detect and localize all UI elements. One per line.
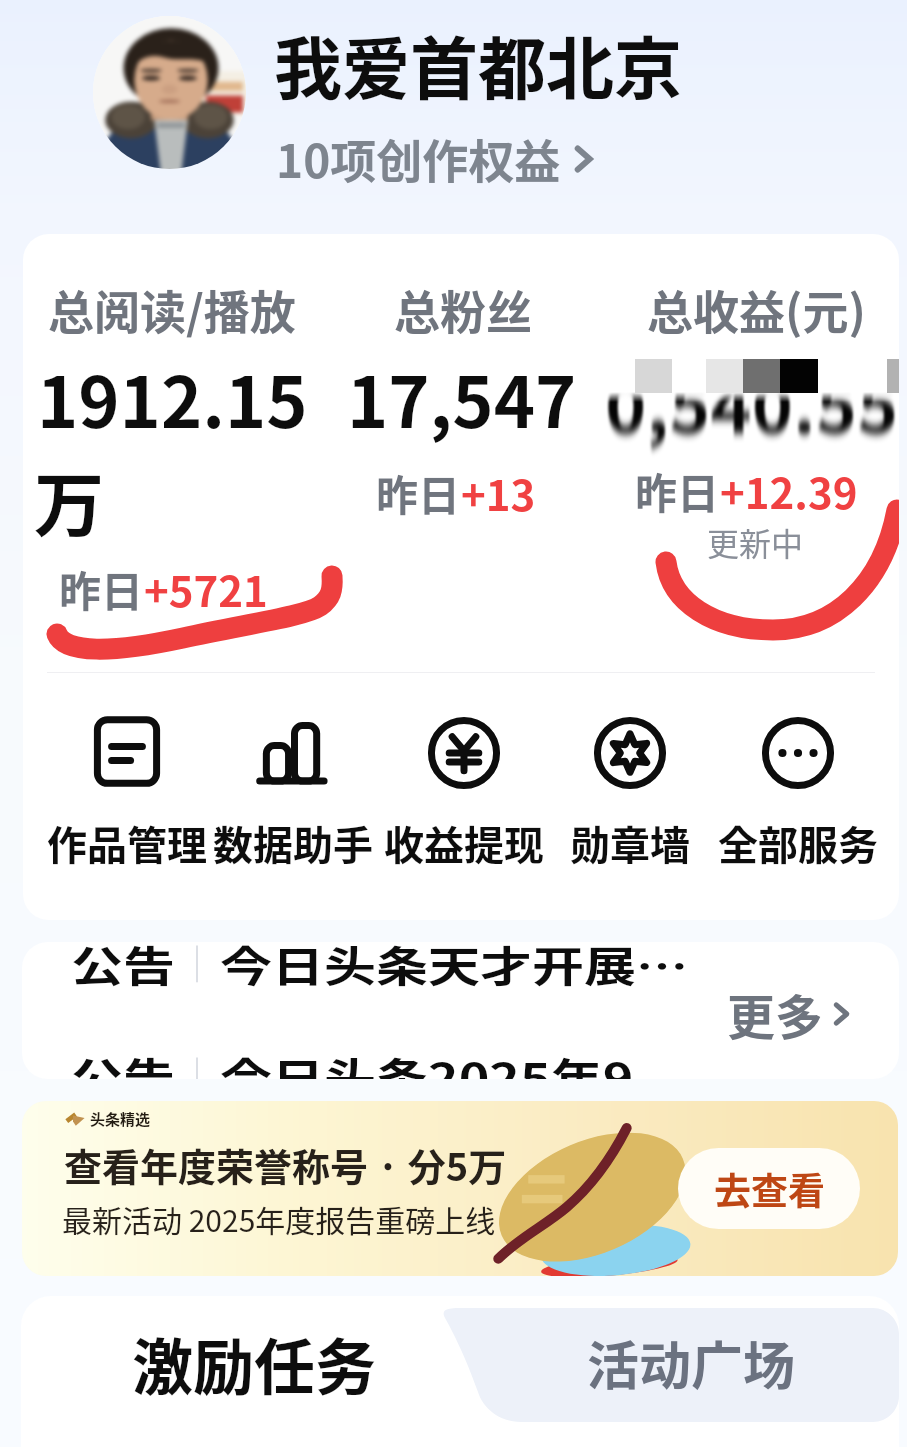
staticText: 收益提现 — [384, 814, 544, 872]
button[interactable]: 头条精选 — [22, 1101, 898, 1276]
staticText: +5721 — [144, 558, 268, 619]
staticText: 10项创作权益 — [276, 125, 561, 192]
button[interactable]: 作品管理 — [44, 704, 210, 874]
staticText: 更新中 — [707, 519, 804, 565]
staticText: 全部服务 — [718, 814, 878, 872]
staticText: 数据助手 — [213, 814, 373, 872]
button[interactable] — [21, 1296, 271, 1447]
staticText: 今日头条2025年9 — [220, 1045, 634, 1079]
button[interactable]: 更多 — [727, 979, 854, 1049]
button[interactable]: 去查看 — [678, 1148, 860, 1229]
button[interactable] — [461, 1296, 899, 1447]
staticText: 1912.15 — [37, 347, 308, 448]
button[interactable]: 全部服务 — [715, 704, 881, 874]
staticText: 昨日 — [635, 460, 720, 521]
button[interactable]: Profile avatar — [93, 16, 246, 169]
staticText: 17,547 — [347, 347, 577, 448]
button[interactable]: 勋章墙 — [547, 704, 713, 874]
button[interactable]: 10项创作权益 — [276, 125, 598, 192]
staticText: 我爱首都北京 — [274, 15, 683, 113]
staticText: 查看年度荣誉称号 · 分5万 — [64, 1137, 507, 1192]
staticText: 0,540.55 — [605, 352, 899, 452]
staticText: 万 — [34, 450, 104, 551]
staticText: 激励任务 — [132, 1319, 377, 1407]
staticText: 昨日 — [376, 462, 461, 523]
staticText: 总阅读/播放 — [48, 276, 296, 343]
staticText: 最新活动 2025年度报告重磅上线 — [62, 1197, 496, 1240]
staticText: 昨日 — [59, 558, 144, 619]
staticText: 作品管理 — [47, 814, 207, 872]
staticText: 更多 — [727, 979, 824, 1049]
staticText: 今日头条天才开展… — [220, 942, 689, 993]
staticText: 勋章墙 — [570, 814, 690, 872]
staticText: +13 — [461, 462, 536, 523]
staticText: +12.39 — [720, 460, 858, 521]
staticText: 活动广场 — [587, 1325, 796, 1400]
staticText: 总粉丝 — [394, 276, 532, 343]
button[interactable]: 公告 — [22, 942, 899, 1079]
staticText: 头条精选 — [90, 1108, 151, 1130]
staticText: 总收益(元) — [647, 276, 866, 343]
staticText: 公告 — [71, 942, 176, 993]
button[interactable]: 收益提现 — [381, 704, 547, 874]
button[interactable]: 数据助手 — [210, 704, 376, 874]
staticText: 去查看 — [714, 1162, 825, 1216]
staticText: 公告 — [71, 1045, 176, 1079]
